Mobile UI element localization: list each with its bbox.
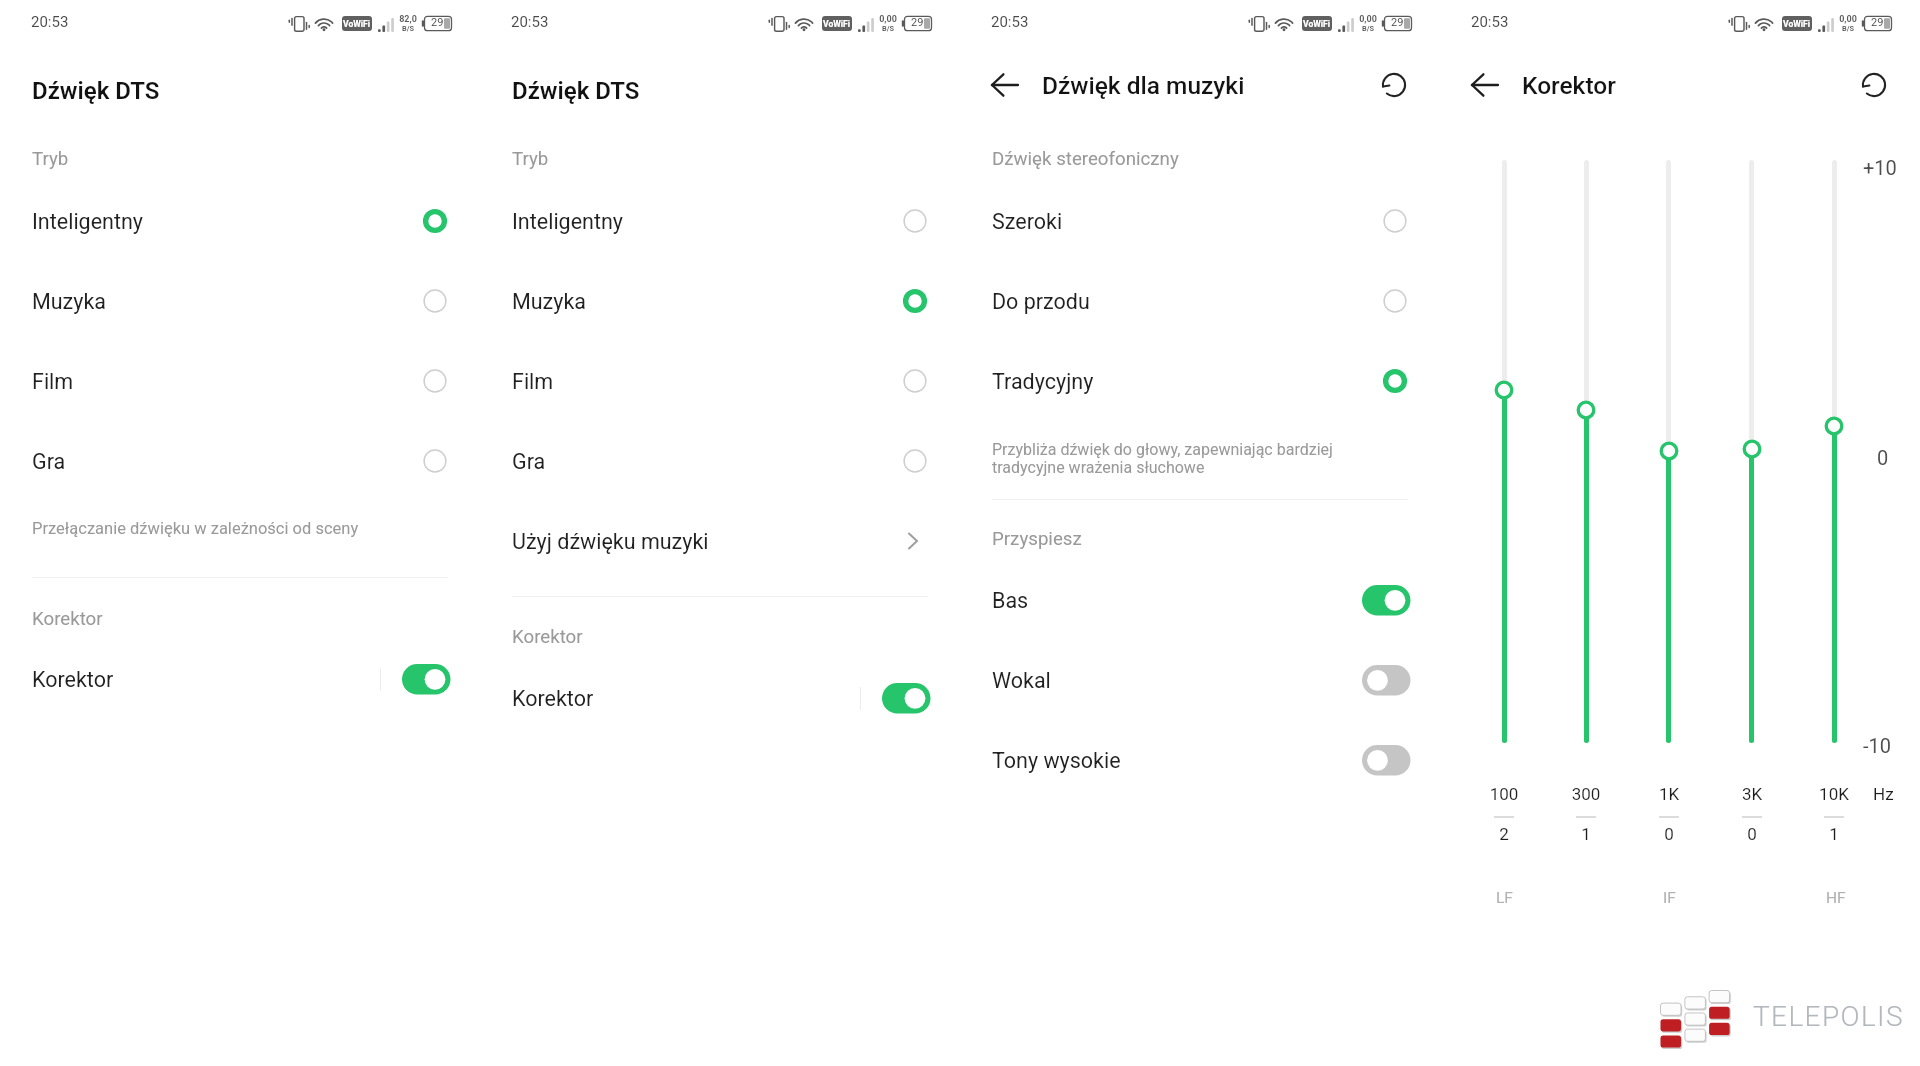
staticText: 29 [1871,16,1884,29]
staticText: Korektor [512,686,594,711]
staticText: Dźwięk dla muzyki [1042,71,1245,100]
staticText: 20:53 [1471,13,1509,31]
button[interactable]: Korektor [480,658,960,738]
staticText: 0 [1637,824,1701,844]
button[interactable]: Tradycyjny [960,341,1440,421]
staticText: Użyj dźwięku muzyki [512,529,709,554]
button[interactable]: Back [983,63,1027,107]
button[interactable]: Inteligentny [0,181,480,261]
button[interactable]: Gra [480,421,960,501]
staticText: 1K [1637,784,1701,804]
staticText: Inteligentny [32,209,144,234]
staticText: 2 [1472,824,1536,844]
staticText: 100 [1472,784,1536,804]
staticText: IF [1663,889,1676,907]
staticText: 20:53 [31,13,69,31]
staticText: 10K [1802,784,1866,804]
button[interactable]: 1K Hz band slider [1647,148,1691,755]
button[interactable]: 10K Hz band slider [1812,148,1856,755]
staticText: 0 [1720,824,1784,844]
staticText: Wokal [992,668,1051,693]
staticText: Przełączanie dźwięku w zależności od sce… [32,519,359,538]
staticText: HF [1826,889,1846,907]
staticText: Korektor [32,667,114,692]
button[interactable]: Film [0,341,480,421]
staticText: Korektor [32,608,103,630]
staticText: Inteligentny [512,209,624,234]
button[interactable]: Tony wysokie [960,720,1440,800]
staticText: 1 [1554,824,1618,844]
button[interactable]: Do przodu [960,261,1440,341]
staticText: VoWiFi [343,19,371,29]
staticText: B/S [878,24,898,33]
staticText: Tradycyjny [992,369,1094,394]
button[interactable]: Inteligentny [480,181,960,261]
staticText: VoWiFi [1783,19,1811,29]
button[interactable]: Wokal [960,640,1440,720]
button[interactable]: Reset [1374,65,1414,105]
staticText: 0 [1877,446,1889,469]
staticText: Szeroki [992,209,1063,234]
staticText: 29 [431,16,444,29]
staticText: Film [32,369,74,394]
button[interactable]: 100 Hz band slider [1482,148,1526,755]
staticText: B/S [1838,24,1858,33]
staticText: 82,0 [398,14,418,25]
staticText: 0,00 [1838,14,1858,25]
staticText: Przybliża dźwięk do głowy, zapewniając b… [992,440,1333,477]
staticText: 29 [1391,16,1404,29]
button[interactable]: Szeroki [960,181,1440,261]
staticText: Korektor [512,626,583,648]
staticText: Hz [1873,784,1894,804]
button[interactable]: Użyj dźwięku muzyki [480,501,960,581]
staticText: Gra [32,449,66,474]
button[interactable]: Muzyka [0,261,480,341]
staticText: Film [512,369,554,394]
staticText: Bas [992,588,1029,613]
button[interactable]: Film [480,341,960,421]
staticText: Przyspiesz [992,528,1082,550]
button[interactable]: 300 Hz band slider [1564,148,1608,755]
staticText: B/S [1358,24,1378,33]
staticText: Dźwięk DTS [32,77,160,105]
staticText: 3K [1720,784,1784,804]
staticText: +10 [1863,156,1897,179]
button[interactable]: Korektor [0,639,480,719]
staticText: Gra [512,449,546,474]
staticText: LF [1496,889,1513,907]
staticText: 0,00 [1358,14,1378,25]
staticText: 300 [1554,784,1618,804]
staticText: VoWiFi [1303,19,1331,29]
staticText: TELEPOLIS [1753,1000,1904,1033]
staticText: 0,00 [878,14,898,25]
staticText: Tony wysokie [992,748,1121,773]
staticText: Muzyka [32,289,107,314]
button[interactable]: Muzyka [480,261,960,341]
button[interactable]: Reset [1854,65,1894,105]
button[interactable]: 3K Hz band slider [1730,148,1774,755]
button[interactable]: Bas [960,560,1440,640]
button[interactable]: Back [1463,63,1507,107]
staticText: 29 [911,16,924,29]
staticText: Tryb [32,148,69,170]
staticText: 20:53 [991,13,1029,31]
staticText: Korektor [1522,71,1616,100]
staticText: VoWiFi [823,19,851,29]
staticText: -10 [1863,734,1892,757]
staticText: B/S [398,24,418,33]
staticText: Do przodu [992,289,1090,314]
button[interactable]: Gra [0,421,480,501]
staticText: 1 [1802,824,1866,844]
staticText: Dźwięk DTS [512,77,640,105]
staticText: Muzyka [512,289,587,314]
staticText: Dźwięk stereofoniczny [992,148,1179,170]
staticText: 20:53 [511,13,549,31]
staticText: Tryb [512,148,549,170]
